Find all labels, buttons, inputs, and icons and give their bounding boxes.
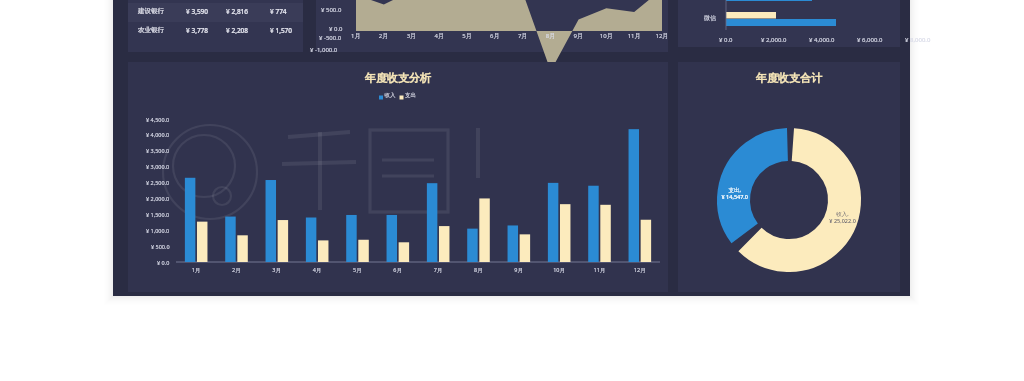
- button[interactable]: 年度收支分析 bar chart: [128, 62, 668, 292]
- button[interactable]: 年度收支分析 bar chart: [0, 0, 1024, 381]
- button[interactable]: 年度收支合计 donut chart: [678, 62, 900, 292]
